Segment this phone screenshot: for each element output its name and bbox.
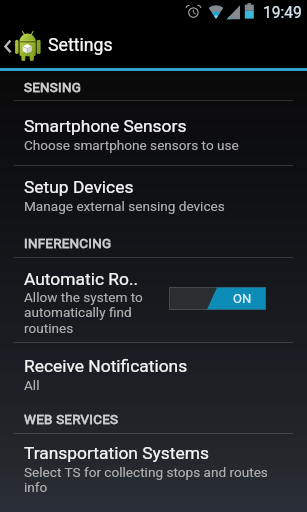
staticText: ON [233,291,252,306]
staticText: Allow the system to automatically find r… [24,289,143,337]
button[interactable]: Setup Devices [24,177,134,197]
staticText: 19:49 [263,4,302,22]
staticText: Choose smartphone sensors to use [24,137,239,153]
button[interactable]: Receive Notifications [24,356,188,376]
staticText: Select TS for collecting stops and route… [24,464,268,496]
staticText: SENSING [24,80,82,96]
button[interactable]: Transportation Systems [24,443,209,463]
button[interactable]: Smartphone Sensors [24,116,187,136]
staticText: Settings [48,35,113,56]
staticText: INFERENCING [24,236,112,252]
button[interactable]: Navigate up [0,24,44,68]
button[interactable]: Automatic Ro.. [24,269,139,289]
staticText: Manage external sensing devices [24,198,225,214]
staticText: WEB SERVICES [24,412,119,428]
staticText: All [24,377,40,393]
button[interactable]: Automatic routines, on [169,287,266,310]
